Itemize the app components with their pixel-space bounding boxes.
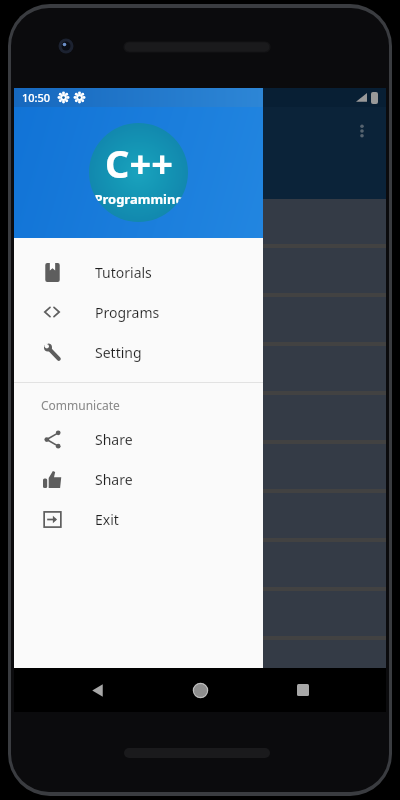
button[interactable] <box>14 444 386 489</box>
button[interactable] <box>14 395 386 440</box>
button[interactable] <box>14 346 386 391</box>
button[interactable]: Basic Programmes <box>14 248 386 293</box>
staticText: Basic Programmes <box>34 261 157 280</box>
button[interactable]: Share <box>14 419 263 459</box>
button[interactable] <box>14 542 386 587</box>
button[interactable]: More options <box>344 113 380 149</box>
button[interactable]: Share <box>14 459 263 499</box>
staticText: Tutorials <box>95 263 152 282</box>
staticText: 10:50 <box>22 90 51 105</box>
button[interactable] <box>14 297 386 342</box>
button[interactable]: Programs <box>14 292 263 332</box>
button[interactable]: Recent apps <box>283 670 323 710</box>
staticText: C++ <box>105 137 173 189</box>
button[interactable]: Home <box>180 670 220 710</box>
button[interactable]: Setting <box>14 332 263 372</box>
staticText: Communicate <box>41 397 120 413</box>
button[interactable] <box>14 199 386 244</box>
staticText: Share <box>95 430 133 449</box>
button[interactable] <box>14 640 386 668</box>
button[interactable]: Tutorials <box>14 252 263 292</box>
button[interactable] <box>14 591 386 636</box>
staticText: Share <box>95 470 133 489</box>
staticText: Exit <box>95 510 119 529</box>
staticText: Programming <box>94 190 184 208</box>
button[interactable] <box>14 493 386 538</box>
button[interactable]: Back <box>77 670 117 710</box>
staticText: Setting <box>95 343 142 362</box>
button[interactable]: Exit <box>14 499 263 539</box>
staticText: Programs <box>95 303 160 322</box>
